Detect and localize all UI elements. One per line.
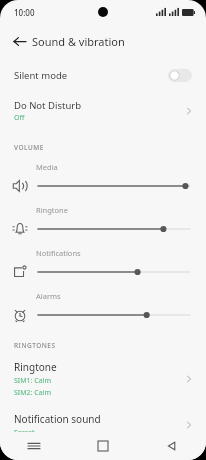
button[interactable]: Ringtone bbox=[0, 199, 206, 242]
button[interactable]: Media bbox=[0, 156, 206, 199]
staticText: Silent mode bbox=[14, 69, 168, 82]
button[interactable]: Do Not Disturb bbox=[0, 92, 206, 130]
staticText: Ringtone bbox=[14, 360, 57, 374]
button[interactable]: Ringtone bbox=[0, 354, 206, 406]
staticText: Alarms bbox=[36, 291, 61, 301]
button[interactable]: Alarms bbox=[0, 285, 206, 328]
staticText: SIM2: Calm bbox=[14, 388, 51, 398]
staticText: RINGTONES bbox=[14, 341, 56, 350]
button[interactable]: Home bbox=[68, 432, 137, 460]
staticText: Notification sound bbox=[14, 412, 101, 426]
staticText: SIM1: Calm bbox=[14, 376, 51, 386]
button[interactable]: Back bbox=[8, 30, 30, 52]
staticText: Off bbox=[14, 113, 25, 123]
staticText: Media bbox=[36, 162, 58, 172]
button[interactable]: Notification sound bbox=[0, 406, 206, 446]
staticText: 10:00 bbox=[14, 7, 35, 18]
staticText: Ringtone bbox=[36, 205, 68, 215]
button[interactable]: Recent apps bbox=[0, 432, 68, 460]
button[interactable]: Back bbox=[137, 432, 206, 460]
staticText: Notifications bbox=[36, 248, 81, 258]
staticText: Sound & vibration bbox=[32, 34, 125, 49]
staticText: Forest bbox=[14, 428, 35, 438]
button[interactable]: Silent mode bbox=[0, 58, 206, 92]
staticText: VOLUME bbox=[14, 143, 44, 152]
staticText: Do Not Disturb bbox=[14, 99, 82, 112]
button[interactable]: Notifications bbox=[0, 242, 206, 285]
